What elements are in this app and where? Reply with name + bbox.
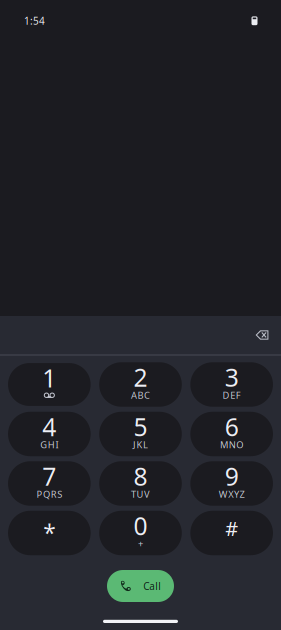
button[interactable]: 0 — [99, 512, 182, 554]
staticText: 3 — [225, 360, 239, 394]
staticText: 9 — [225, 459, 239, 493]
staticText: 0 — [133, 509, 147, 543]
button[interactable]: 2 — [99, 363, 182, 405]
button[interactable]: 9 — [190, 462, 273, 504]
button[interactable]: 3 — [190, 363, 273, 405]
button[interactable]: 8 — [99, 462, 182, 504]
staticText: WXYZ — [219, 488, 245, 501]
staticText: TUV — [131, 488, 150, 501]
staticText: * — [43, 517, 55, 548]
staticText: 1:54 — [24, 14, 45, 28]
staticText: 6 — [225, 410, 239, 444]
button[interactable]: 7 — [8, 462, 91, 504]
button[interactable]: 1 — [8, 363, 91, 405]
staticText: Call — [143, 579, 161, 593]
button[interactable]: 5 — [99, 413, 182, 455]
button[interactable]: * — [8, 512, 91, 554]
staticText: 1 — [42, 361, 56, 395]
button[interactable]: # — [190, 512, 273, 554]
staticText: # — [225, 515, 238, 542]
staticText: DEF — [223, 389, 241, 402]
staticText: 5 — [133, 410, 147, 444]
staticText: PQRS — [36, 488, 62, 501]
staticText: 4 — [42, 410, 56, 444]
staticText: 8 — [133, 459, 147, 493]
staticText: JKL — [133, 438, 148, 451]
staticText: 7 — [42, 459, 56, 493]
staticText: + — [138, 537, 143, 550]
button[interactable]: 4 — [8, 413, 91, 455]
button[interactable]: Call — [107, 570, 174, 602]
staticText: 2 — [133, 360, 147, 394]
staticText: GHI — [40, 438, 58, 451]
staticText: ABC — [131, 389, 150, 402]
button[interactable]: Backspace — [247, 322, 277, 348]
button[interactable]: 6 — [190, 413, 273, 455]
staticText: MNO — [220, 438, 243, 451]
